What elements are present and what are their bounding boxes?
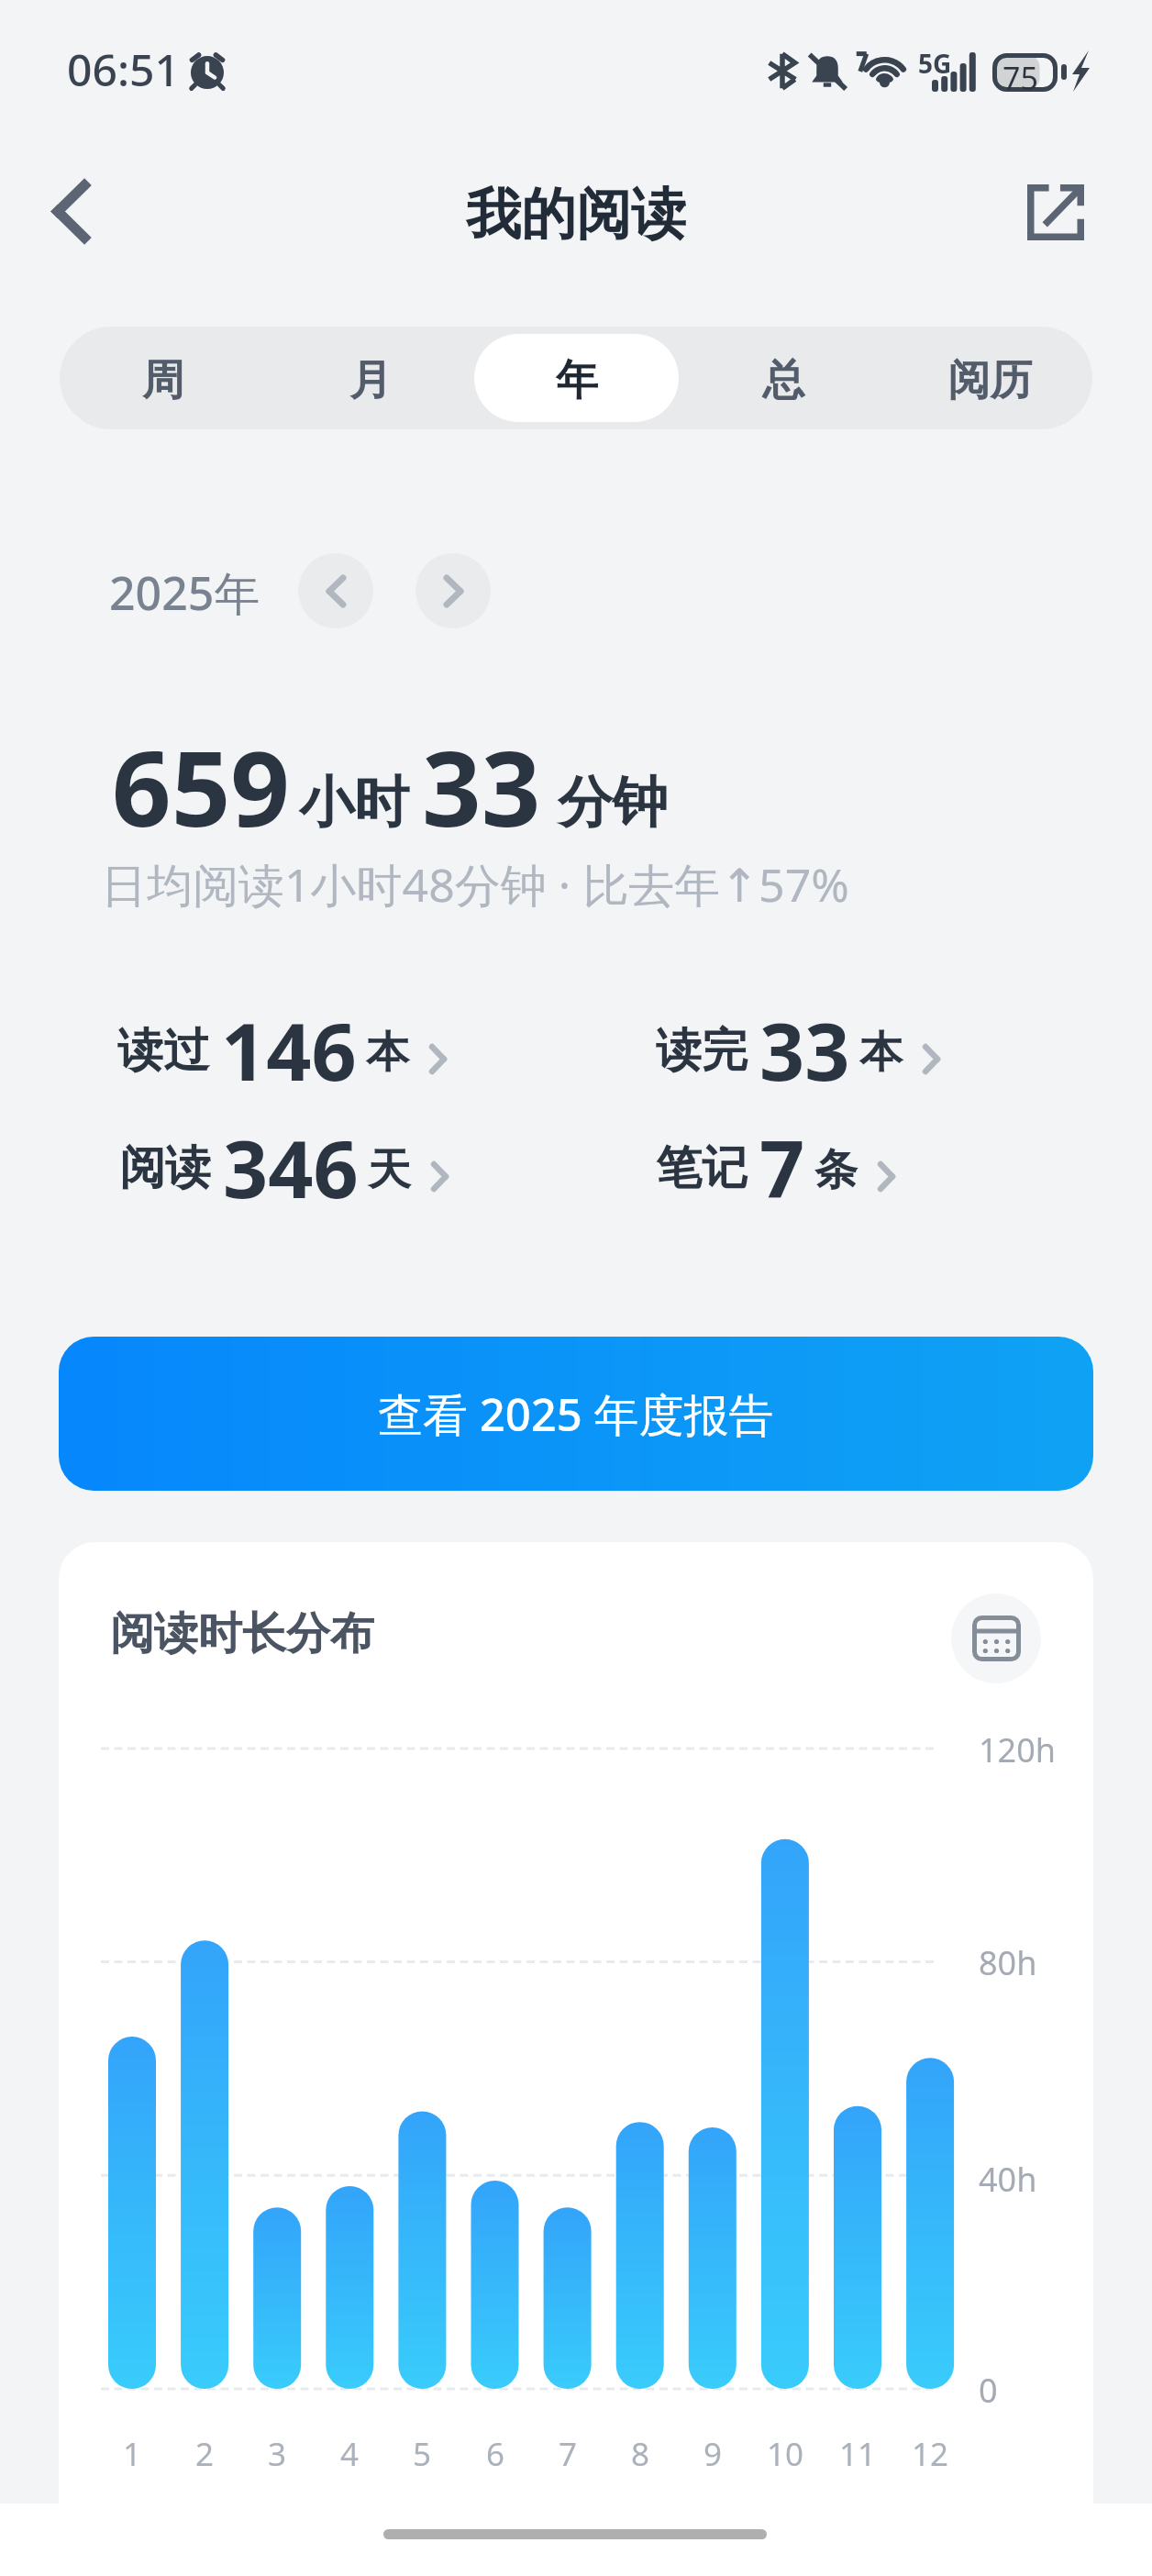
button[interactable]: 月 (268, 334, 472, 422)
staticText: 本 (366, 1026, 409, 1080)
button[interactable]: Next year (415, 553, 491, 628)
staticText: 我的阅读 (466, 180, 686, 250)
staticText: 笔记 (656, 1139, 748, 1197)
button[interactable]: 查看 2025 年度报告 (59, 1337, 1093, 1491)
staticText: 06:51 (67, 39, 180, 99)
staticText: 月 (349, 354, 392, 407)
staticText: 80h (979, 1940, 1037, 1985)
staticText: 40h (979, 2157, 1037, 2202)
staticText: 总 (762, 354, 804, 407)
button[interactable]: 周 (61, 334, 266, 422)
staticText: 659 (112, 716, 290, 857)
staticText: 12 (912, 2432, 949, 2476)
staticText: 天 (368, 1143, 411, 1197)
staticText: 周 (142, 354, 184, 407)
staticText: 分钟 (558, 768, 668, 838)
staticText: 小时 (299, 768, 409, 838)
staticText: 本 (859, 1026, 903, 1080)
staticText: 查看 2025 年度报告 (378, 1383, 774, 1445)
staticText: 读过 (117, 1022, 209, 1080)
button[interactable]: Back (25, 165, 116, 257)
staticText: 2025年 (109, 561, 260, 624)
staticText: 33 (759, 996, 850, 1084)
staticText: 9 (703, 2432, 723, 2476)
button[interactable]: 读过 (117, 996, 447, 1084)
staticText: 4 (340, 2432, 360, 2476)
staticText: 346 (223, 1114, 359, 1202)
staticText: 阅历 (947, 354, 1032, 407)
staticText: 75 (1002, 57, 1038, 99)
staticText: 1 (123, 2432, 142, 2476)
staticText: 阅读 (119, 1139, 211, 1197)
staticText: 5G (918, 46, 952, 81)
staticText: 6 (486, 2432, 505, 2476)
staticText: 条 (814, 1143, 858, 1197)
staticText: 5 (413, 2432, 432, 2476)
staticText: 读完 (656, 1022, 748, 1080)
staticText: 年 (556, 354, 598, 407)
staticText: 8 (631, 2432, 650, 2476)
staticText: 阅读时长分布 (110, 1606, 374, 1661)
button[interactable]: 阅读 (119, 1114, 449, 1202)
button[interactable]: 总 (681, 334, 885, 422)
staticText: 日均阅读1小时48分钟 · 比去年↑57% (101, 853, 849, 916)
button[interactable]: 年 (474, 334, 679, 422)
staticText: 7 (559, 2432, 578, 2476)
button[interactable]: 阅历 (887, 334, 1091, 422)
button[interactable]: Previous year (298, 553, 373, 628)
staticText: 120h (979, 1727, 1057, 1772)
staticText: 11 (839, 2432, 877, 2476)
staticText: 10 (767, 2432, 804, 2476)
staticText: 33 (422, 716, 541, 857)
button[interactable]: Pick month (951, 1593, 1041, 1683)
staticText: 7 (759, 1114, 805, 1202)
staticText: 2 (195, 2432, 215, 2476)
staticText: 0 (979, 2368, 998, 2413)
staticText: 146 (221, 996, 357, 1084)
staticText: 3 (268, 2432, 287, 2476)
button[interactable]: 读完 (656, 996, 940, 1084)
button[interactable]: Share (1010, 166, 1102, 258)
button[interactable]: 笔记 (656, 1114, 895, 1202)
